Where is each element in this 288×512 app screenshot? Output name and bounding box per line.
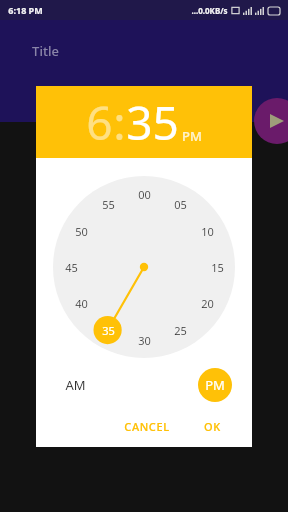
button[interactable]: 25 [169, 319, 191, 341]
staticText: 00 [138, 187, 151, 202]
button[interactable]: PM [198, 368, 232, 402]
staticText: 55 [102, 197, 115, 212]
staticText: 30 [138, 333, 151, 348]
button[interactable]: 15 [206, 256, 228, 278]
button[interactable]: Play [254, 98, 288, 144]
button[interactable]: 10 [196, 220, 218, 242]
button[interactable]: 05 [169, 193, 191, 215]
staticText: 15 [211, 260, 224, 275]
button[interactable]: 35 [97, 319, 119, 341]
staticText: 10 [201, 224, 214, 239]
staticText: 05 [174, 197, 187, 212]
staticText: 6 [86, 91, 113, 154]
button[interactable]: 40 [70, 292, 92, 314]
button[interactable]: 45 [60, 256, 82, 278]
staticText: 6:18 PM [8, 4, 43, 16]
staticText: 35 [102, 323, 115, 338]
button[interactable]: 30 [133, 329, 155, 351]
button[interactable]: 6 [36, 86, 252, 158]
button[interactable]: AM [58, 368, 92, 402]
staticText: 20 [201, 296, 214, 311]
button[interactable]: OK [198, 415, 227, 438]
staticText: 45 [65, 260, 78, 275]
button[interactable]: CANCEL [118, 415, 176, 438]
staticText: 40 [75, 296, 88, 311]
button[interactable]: 50 [70, 220, 92, 242]
staticText: : [113, 91, 126, 154]
staticText: PM [205, 376, 225, 394]
staticText: ...0.0KB/s [191, 5, 228, 16]
button[interactable]: 20 [196, 292, 218, 314]
button[interactable]: 55 [97, 193, 119, 215]
staticText: 35 [126, 91, 179, 154]
staticText: 50 [75, 224, 88, 239]
staticText: PM [182, 127, 202, 145]
staticText: AM [65, 376, 86, 394]
staticText: Title [32, 42, 59, 60]
button[interactable]: 00 [133, 183, 155, 205]
staticText: OK [204, 419, 221, 434]
staticText: 25 [174, 323, 187, 338]
staticText: CANCEL [124, 419, 170, 434]
